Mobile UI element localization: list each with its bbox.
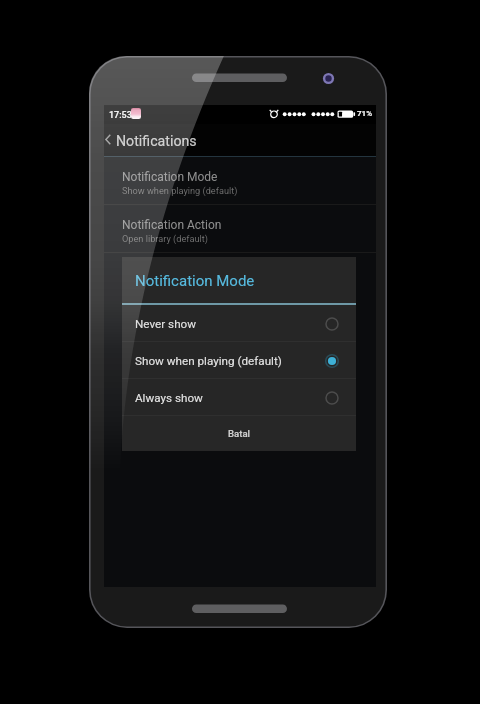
staticText: Batal bbox=[228, 428, 251, 439]
staticText: Open library (default) bbox=[122, 233, 208, 244]
staticText: Notifications bbox=[116, 133, 197, 150]
button[interactable]: Batal bbox=[122, 416, 356, 451]
staticText: Notification Action bbox=[122, 218, 222, 232]
staticText: Always show bbox=[135, 391, 323, 405]
staticText: Never show bbox=[135, 317, 323, 331]
staticText: Show when playing (default) bbox=[122, 185, 238, 196]
staticText: Show when playing (default) bbox=[135, 354, 323, 368]
button[interactable]: Never show bbox=[122, 305, 356, 342]
button[interactable]: Notification Mode bbox=[104, 157, 376, 205]
staticText: 17:53 bbox=[109, 110, 132, 121]
button[interactable]: Notification Action bbox=[104, 205, 376, 253]
button[interactable]: Show when playing (default) bbox=[122, 342, 356, 379]
staticText: Notification Mode bbox=[122, 170, 218, 184]
button[interactable]: Back to Notifications bbox=[104, 124, 376, 157]
staticText: 71% bbox=[357, 109, 373, 118]
button[interactable]: Always show bbox=[122, 379, 356, 416]
staticText: Notification Mode bbox=[135, 272, 255, 290]
